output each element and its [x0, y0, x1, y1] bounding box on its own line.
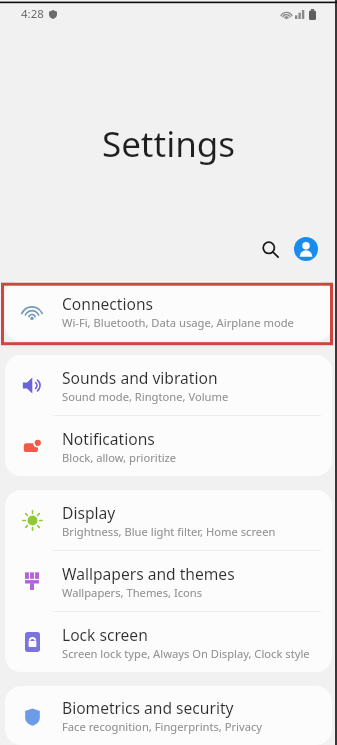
staticText: Display: [62, 502, 116, 523]
staticText: Block, allow, prioritize: [62, 450, 177, 465]
button[interactable]: Sounds and vibration: [5, 355, 332, 415]
button[interactable]: Connections: [5, 281, 332, 341]
staticText: Lock screen: [62, 624, 148, 645]
staticText: Connections: [62, 293, 154, 314]
staticText: Notifications: [62, 428, 155, 449]
button[interactable]: Lock screen: [5, 612, 332, 672]
button[interactable]: Account: [288, 231, 324, 267]
staticText: Sounds and vibration: [62, 367, 218, 388]
button[interactable]: Display: [5, 490, 332, 550]
staticText: Settings: [0, 120, 337, 168]
button[interactable]: Wallpapers and themes: [5, 551, 332, 611]
staticText: Biometrics and security: [62, 697, 234, 718]
button[interactable]: Search: [250, 229, 290, 269]
staticText: Sound mode, Ringtone, Volume: [62, 389, 229, 404]
staticText: Face recognition, Fingerprints, Privacy: [62, 719, 263, 734]
staticText: Screen lock type, Always On Display, Clo…: [62, 646, 310, 661]
button[interactable]: Notifications: [5, 416, 332, 476]
staticText: Wallpapers and themes: [62, 563, 235, 584]
staticText: Brightness, Blue light filter, Home scre…: [62, 524, 276, 539]
button[interactable]: Biometrics and security: [5, 686, 332, 745]
staticText: Wi-Fi, Bluetooth, Data usage, Airplane m…: [62, 315, 294, 330]
staticText: Wallpapers, Themes, Icons: [62, 585, 203, 600]
staticText: 4:28: [21, 6, 44, 22]
